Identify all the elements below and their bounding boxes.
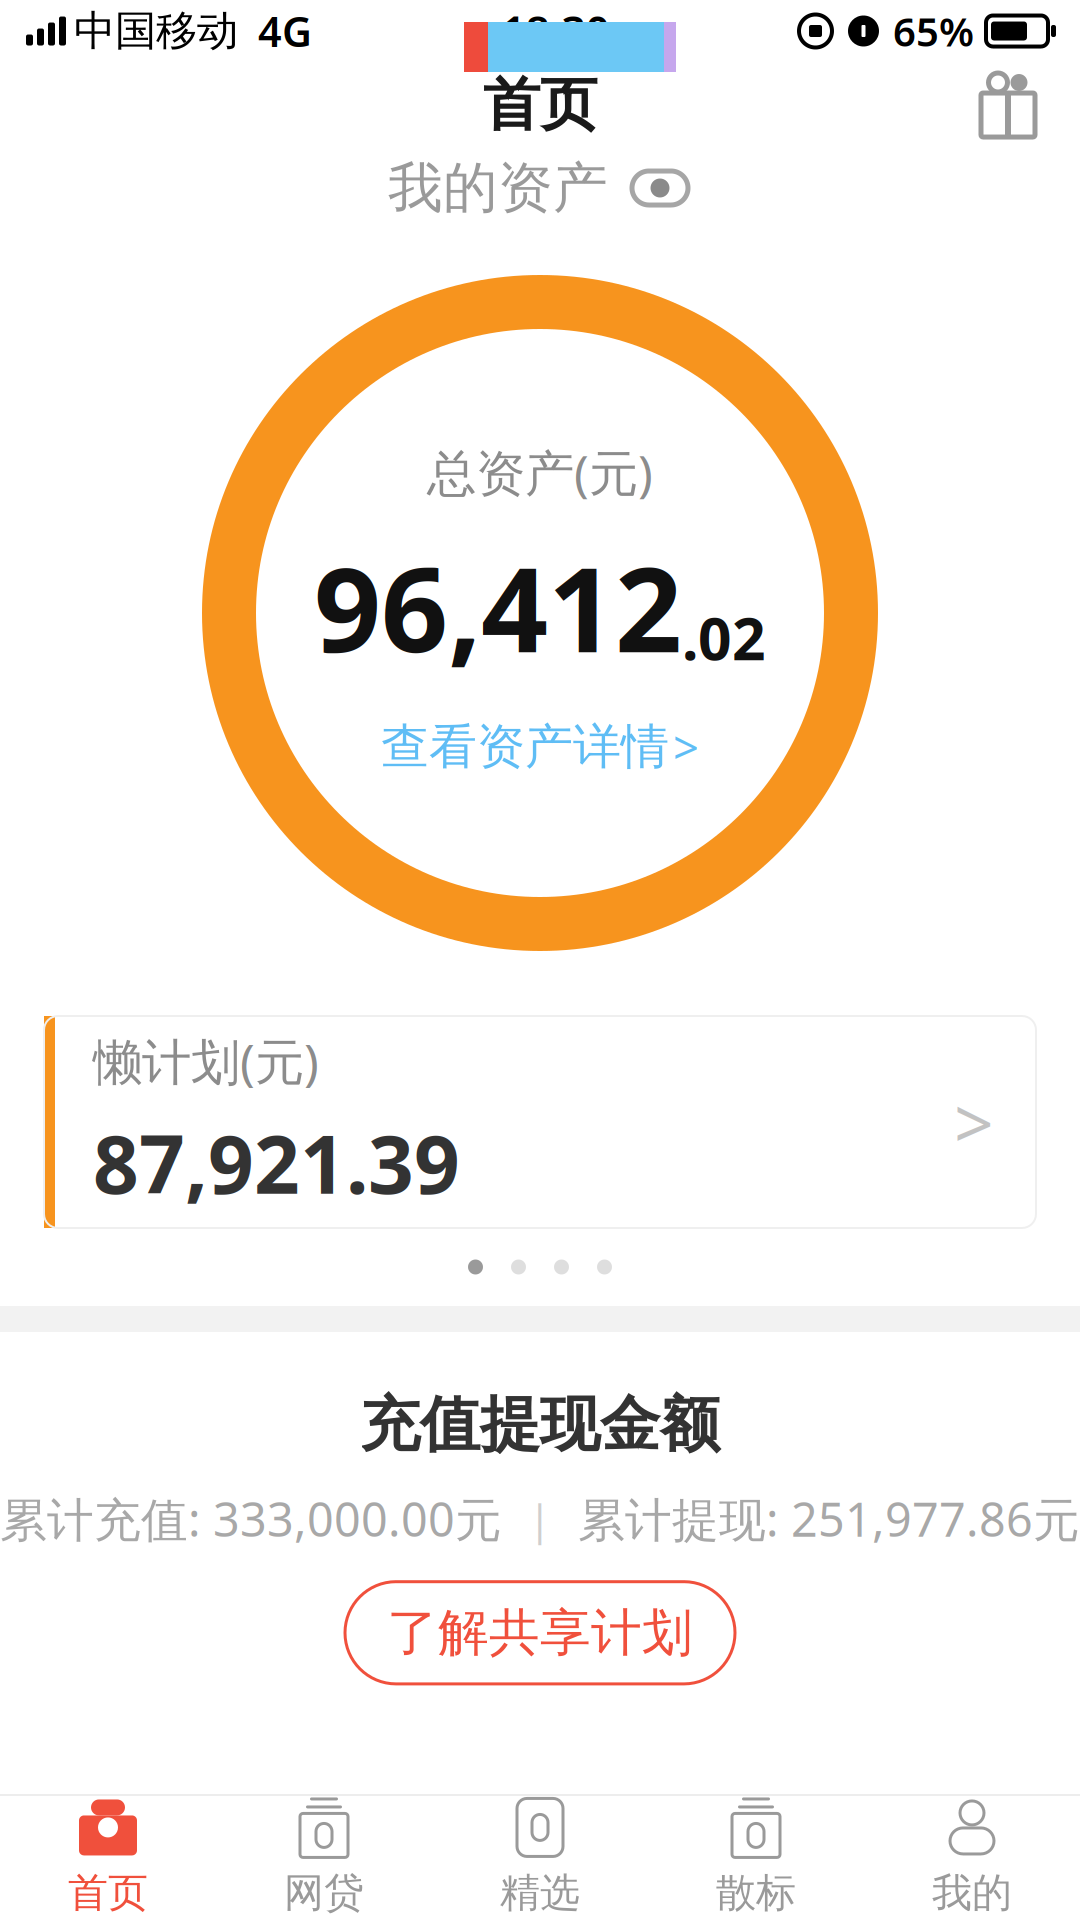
staticText: 充值提现金额 (360, 1388, 720, 1462)
staticText: 精选 (500, 1868, 580, 1917)
staticText: 我的资产 (388, 154, 608, 221)
button[interactable]: 显示或隐藏资产 (628, 164, 692, 212)
button[interactable]: 网贷 (216, 1794, 432, 1920)
staticText: 中国移动 (74, 6, 238, 56)
button[interactable]: 查看资产详情 (357, 707, 723, 787)
button[interactable]: 了解共享计划 (345, 1582, 735, 1684)
staticText: 累计提现: 251,977.86元 (578, 1488, 1080, 1550)
staticText: 首页 (483, 70, 597, 140)
staticText: 我的 (932, 1868, 1012, 1917)
staticText: 4G (258, 4, 312, 58)
staticText: 散标 (716, 1868, 796, 1917)
staticText: 累计充值: 333,000.00元 (0, 1488, 502, 1550)
staticText: 87,921.39 (93, 1110, 460, 1216)
staticText: > (673, 717, 699, 777)
button[interactable]: 活动礼物 (960, 63, 1056, 147)
staticText: 懒计划(元) (93, 1028, 319, 1094)
button[interactable]: 散标 (648, 1794, 864, 1920)
staticText: 总资产(元) (427, 439, 653, 505)
button[interactable]: 精选 (432, 1794, 648, 1920)
staticText: 查看资产详情 (381, 717, 669, 776)
button[interactable]: 懒计划(元) (44, 1016, 1036, 1228)
staticText: 网贷 (284, 1868, 364, 1917)
button[interactable]: 首页 (0, 1794, 216, 1920)
staticText: 96,412 (314, 529, 682, 684)
staticText: 18:30 (501, 3, 609, 59)
staticText: > (954, 1076, 994, 1168)
staticText: | (528, 1490, 552, 1547)
button[interactable]: 我的 (864, 1794, 1080, 1920)
staticText: .02 (682, 599, 766, 677)
staticText: 了解共享计划 (387, 1602, 693, 1664)
staticText: 首页 (68, 1868, 148, 1917)
staticText: 65% (893, 4, 974, 57)
